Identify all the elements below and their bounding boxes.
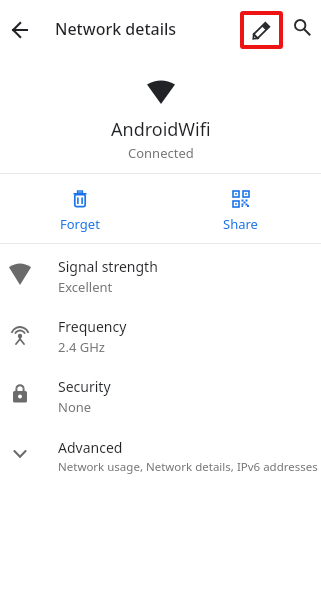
- button[interactable]: Advanced: [0, 424, 321, 484]
- button[interactable]: [288, 13, 316, 41]
- staticText: Forget: [60, 215, 100, 233]
- staticText: Network usage, Network details, IPv6 add…: [58, 459, 318, 475]
- staticText: Network details: [55, 18, 177, 40]
- staticText: Share: [223, 215, 258, 233]
- button[interactable]: [6, 16, 34, 44]
- staticText: Connected: [128, 144, 194, 162]
- staticText: Excellent: [58, 278, 113, 296]
- button[interactable]: Security: [0, 364, 321, 424]
- button[interactable]: Forget: [0, 174, 160, 233]
- staticText: None: [58, 398, 92, 416]
- staticText: 2.4 GHz: [58, 338, 105, 356]
- staticText: Signal strength: [58, 257, 158, 276]
- staticText: Advanced: [58, 438, 123, 457]
- staticText: Security: [58, 377, 111, 396]
- button[interactable]: Signal strength: [0, 244, 321, 304]
- staticText: Frequency: [58, 317, 127, 336]
- button[interactable]: Share: [160, 174, 321, 233]
- staticText: AndroidWifi: [111, 117, 211, 142]
- button[interactable]: Frequency: [0, 304, 321, 364]
- button[interactable]: [240, 11, 283, 49]
